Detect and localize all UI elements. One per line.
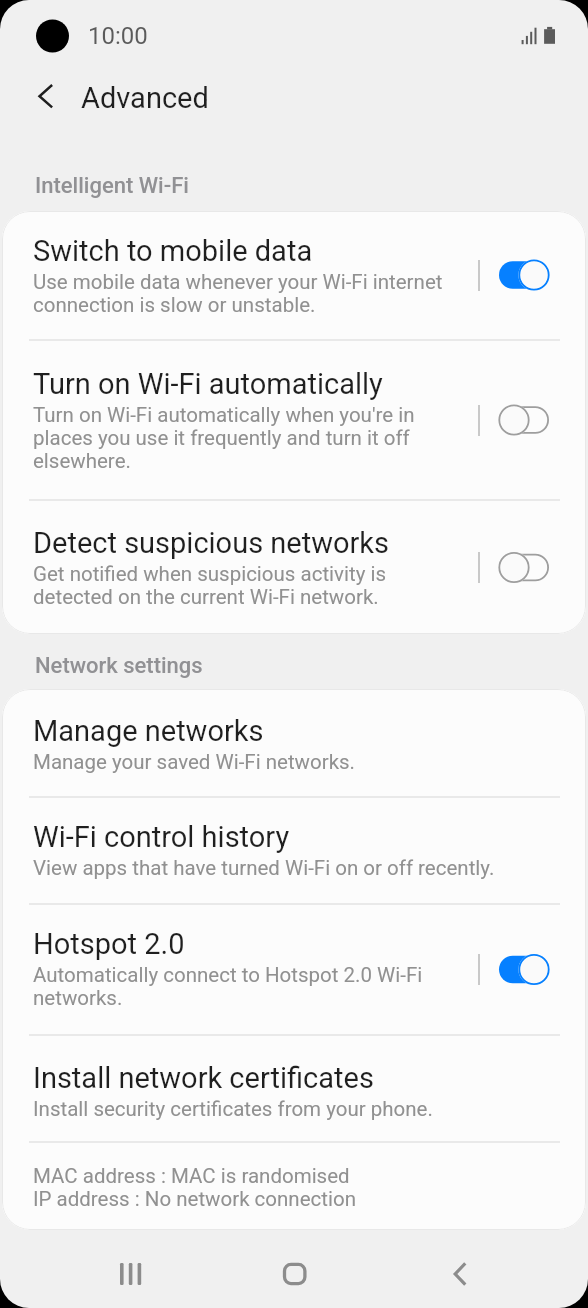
staticText: Turn on Wi-Fi automatically bbox=[33, 367, 383, 401]
button[interactable]: Navigate up bbox=[17, 69, 72, 124]
button[interactable]: Toggle off bbox=[481, 341, 586, 499]
staticText: Advanced bbox=[81, 81, 209, 115]
staticText: Switch to mobile data bbox=[33, 234, 313, 268]
button[interactable]: Wi-Fi control history bbox=[2, 798, 586, 903]
staticText: Intelligent Wi-Fi bbox=[35, 173, 189, 199]
button[interactable]: Home bbox=[247, 1239, 343, 1308]
button[interactable]: Switch to mobile data bbox=[2, 211, 586, 339]
button[interactable]: Toggle on bbox=[481, 905, 586, 1034]
button[interactable]: Turn on Wi-Fi automatically bbox=[2, 341, 586, 499]
staticText: Install network certificates bbox=[33, 1061, 374, 1095]
button[interactable]: Toggle on bbox=[481, 211, 586, 339]
button[interactable]: Back bbox=[411, 1239, 507, 1308]
staticText: Turn on Wi-Fi automatically when you're … bbox=[33, 403, 415, 473]
staticText: Hotspot 2.0 bbox=[33, 927, 185, 961]
button[interactable]: Recent apps bbox=[82, 1239, 178, 1308]
staticText: Automatically connect to Hotspot 2.0 Wi-… bbox=[33, 963, 423, 1010]
button[interactable]: Install network certificates bbox=[2, 1036, 586, 1141]
staticText: View apps that have turned Wi-Fi on or o… bbox=[33, 856, 495, 880]
button[interactable]: Detect suspicious networks bbox=[2, 501, 586, 634]
staticText: 10:00 bbox=[88, 22, 148, 50]
staticText: Use mobile data whenever your Wi-Fi inte… bbox=[33, 270, 443, 317]
staticText: Install security certificates from your … bbox=[33, 1097, 433, 1121]
button[interactable]: Hotspot 2.0 bbox=[2, 905, 586, 1034]
staticText: MAC address : MAC is randomised IP addre… bbox=[33, 1164, 356, 1211]
staticText: Detect suspicious networks bbox=[33, 526, 390, 560]
staticText: Network settings bbox=[35, 653, 203, 679]
staticText: Wi-Fi control history bbox=[33, 820, 290, 854]
button[interactable]: Toggle off bbox=[481, 501, 586, 634]
staticText: Get notified when suspicious activity is… bbox=[33, 562, 387, 609]
staticText: Manage your saved Wi-Fi networks. bbox=[33, 750, 356, 774]
button[interactable]: Manage networks bbox=[2, 689, 586, 796]
staticText: Manage networks bbox=[33, 714, 264, 748]
